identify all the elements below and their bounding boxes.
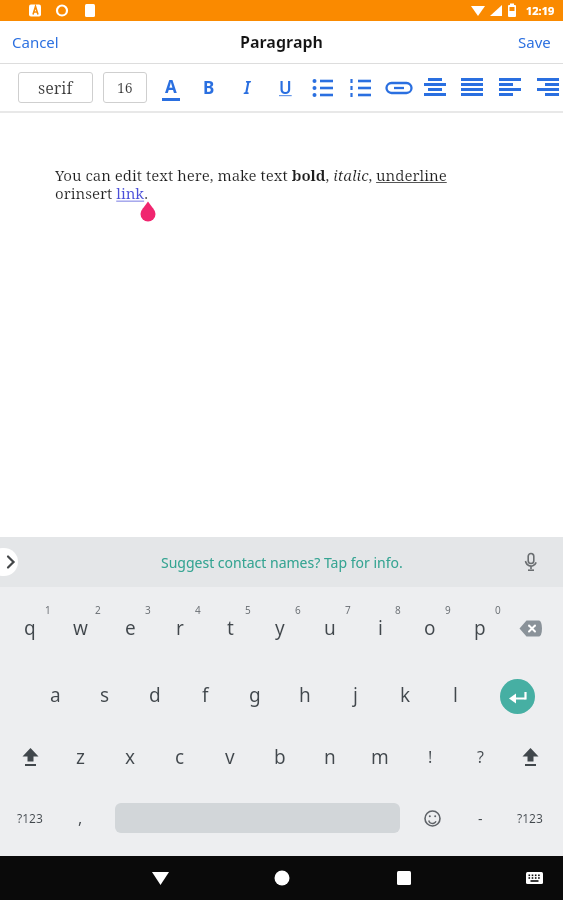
staticText: x xyxy=(125,744,136,770)
staticText: ! xyxy=(428,746,433,768)
button[interactable]: c xyxy=(157,730,203,784)
button[interactable]: A xyxy=(152,64,190,111)
button[interactable] xyxy=(139,856,181,900)
staticText: c xyxy=(175,744,185,770)
button[interactable]: ?123 xyxy=(7,791,53,845)
staticText: z xyxy=(76,744,85,770)
button[interactable]: x xyxy=(107,730,153,784)
staticText: Suggest contact names? Tap for info. xyxy=(161,553,403,572)
staticText: , xyxy=(78,807,83,829)
staticText: 8 xyxy=(395,603,401,617)
button[interactable]: s xyxy=(82,668,128,722)
button[interactable]: j xyxy=(332,668,378,722)
staticText: s xyxy=(100,682,110,708)
button[interactable]: ? xyxy=(457,730,503,784)
button[interactable] xyxy=(409,791,455,845)
button[interactable]: serif xyxy=(18,72,93,103)
button[interactable]: o xyxy=(407,601,453,655)
staticText: y xyxy=(275,615,285,641)
staticText: B xyxy=(203,76,215,99)
button[interactable]: B xyxy=(190,64,228,111)
button[interactable] xyxy=(304,64,342,111)
staticText: l xyxy=(453,682,458,708)
button[interactable] xyxy=(516,856,552,900)
button[interactable]: , xyxy=(57,791,103,845)
button[interactable]: Save xyxy=(510,24,563,60)
button[interactable]: p xyxy=(457,601,503,655)
button[interactable]: i xyxy=(357,601,403,655)
staticText: 3 xyxy=(145,603,151,617)
button[interactable] xyxy=(416,64,454,111)
button[interactable] xyxy=(453,64,491,111)
button[interactable]: e xyxy=(107,601,153,655)
staticText: b xyxy=(274,744,286,770)
staticText: t xyxy=(227,615,234,641)
button[interactable]: v xyxy=(207,730,253,784)
button[interactable] xyxy=(507,730,553,784)
staticText: a xyxy=(50,682,61,708)
staticText: Paragraph xyxy=(240,31,323,53)
staticText: ?123 xyxy=(17,810,43,826)
button[interactable]: k xyxy=(382,668,428,722)
button[interactable] xyxy=(0,548,18,576)
button[interactable]: g xyxy=(232,668,278,722)
staticText: - xyxy=(478,809,483,828)
button[interactable]: I xyxy=(228,64,266,111)
button[interactable]: y xyxy=(257,601,303,655)
button[interactable]: u xyxy=(307,601,353,655)
button[interactable] xyxy=(491,64,529,111)
staticText: u xyxy=(324,615,336,641)
staticText: j xyxy=(353,682,358,708)
staticText: i xyxy=(378,615,383,641)
button[interactable]: h xyxy=(282,668,328,722)
button[interactable] xyxy=(500,679,535,714)
button[interactable]: q xyxy=(7,601,53,655)
button[interactable]: ! xyxy=(407,730,453,784)
staticText: f xyxy=(202,682,209,708)
button[interactable]: U xyxy=(266,64,304,111)
staticText: 0 xyxy=(495,603,501,617)
staticText: 7 xyxy=(345,603,351,617)
staticText: 9 xyxy=(445,603,451,617)
button[interactable]: Cancel xyxy=(0,24,67,60)
button[interactable]: w xyxy=(57,601,103,655)
button[interactable]: - xyxy=(457,791,503,845)
button[interactable] xyxy=(507,601,553,655)
button[interactable]: d xyxy=(132,668,178,722)
staticText: 2 xyxy=(95,603,101,617)
staticText: ?123 xyxy=(517,810,543,826)
staticText: serif xyxy=(38,77,73,99)
button[interactable]: 16 xyxy=(103,72,147,103)
button[interactable]: a xyxy=(32,668,78,722)
staticText: I xyxy=(244,76,251,99)
button[interactable] xyxy=(7,730,53,784)
button[interactable] xyxy=(261,856,303,900)
button[interactable]: l xyxy=(432,668,478,722)
staticText: d xyxy=(149,682,161,708)
button[interactable]: t xyxy=(207,601,253,655)
staticText: Cancel xyxy=(12,32,59,52)
staticText: 12:19 xyxy=(526,3,555,18)
staticText: w xyxy=(73,615,88,641)
staticText: h xyxy=(299,682,311,708)
staticText: 16 xyxy=(117,78,133,97)
button[interactable] xyxy=(342,64,380,111)
staticText: 4 xyxy=(195,603,201,617)
button[interactable]: n xyxy=(307,730,353,784)
staticText: m xyxy=(371,744,389,770)
staticText: U xyxy=(279,76,292,99)
button[interactable]: m xyxy=(357,730,403,784)
button[interactable]: z xyxy=(57,730,103,784)
button[interactable]: Suggest contact names? Tap for info. xyxy=(161,553,403,572)
button[interactable]: r xyxy=(157,601,203,655)
button[interactable] xyxy=(529,64,563,111)
staticText: q xyxy=(24,615,36,641)
staticText: 1 xyxy=(45,603,51,617)
button[interactable]: ?123 xyxy=(507,791,553,845)
button[interactable] xyxy=(383,856,425,900)
button[interactable]: f xyxy=(182,668,228,722)
staticText: Save xyxy=(518,32,551,52)
button[interactable] xyxy=(380,64,418,111)
button[interactable]: b xyxy=(257,730,303,784)
